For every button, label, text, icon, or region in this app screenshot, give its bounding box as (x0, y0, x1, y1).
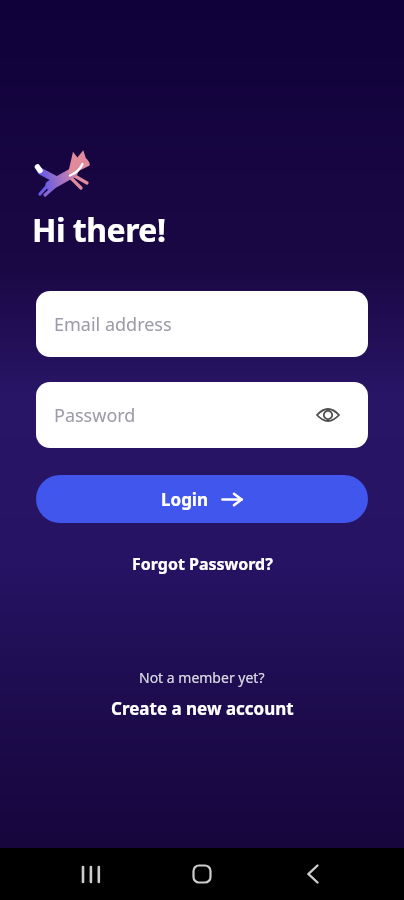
button[interactable]: Forgot Password? (132, 553, 273, 575)
staticText: Hi there! (32, 208, 166, 252)
button[interactable]: Email address (36, 291, 368, 357)
staticText: Password (54, 403, 136, 428)
staticText: Email address (54, 312, 172, 337)
button[interactable] (178, 850, 226, 898)
button[interactable]: Password (36, 382, 368, 448)
staticText: Forgot Password? (132, 553, 273, 575)
staticText: Not a member yet? (139, 668, 265, 687)
button[interactable]: Login (36, 475, 368, 523)
staticText: Create a new account (111, 697, 294, 720)
button[interactable]: Create a new account (111, 697, 294, 720)
button[interactable] (289, 850, 337, 898)
staticText: Login (161, 488, 209, 511)
button[interactable] (67, 850, 115, 898)
